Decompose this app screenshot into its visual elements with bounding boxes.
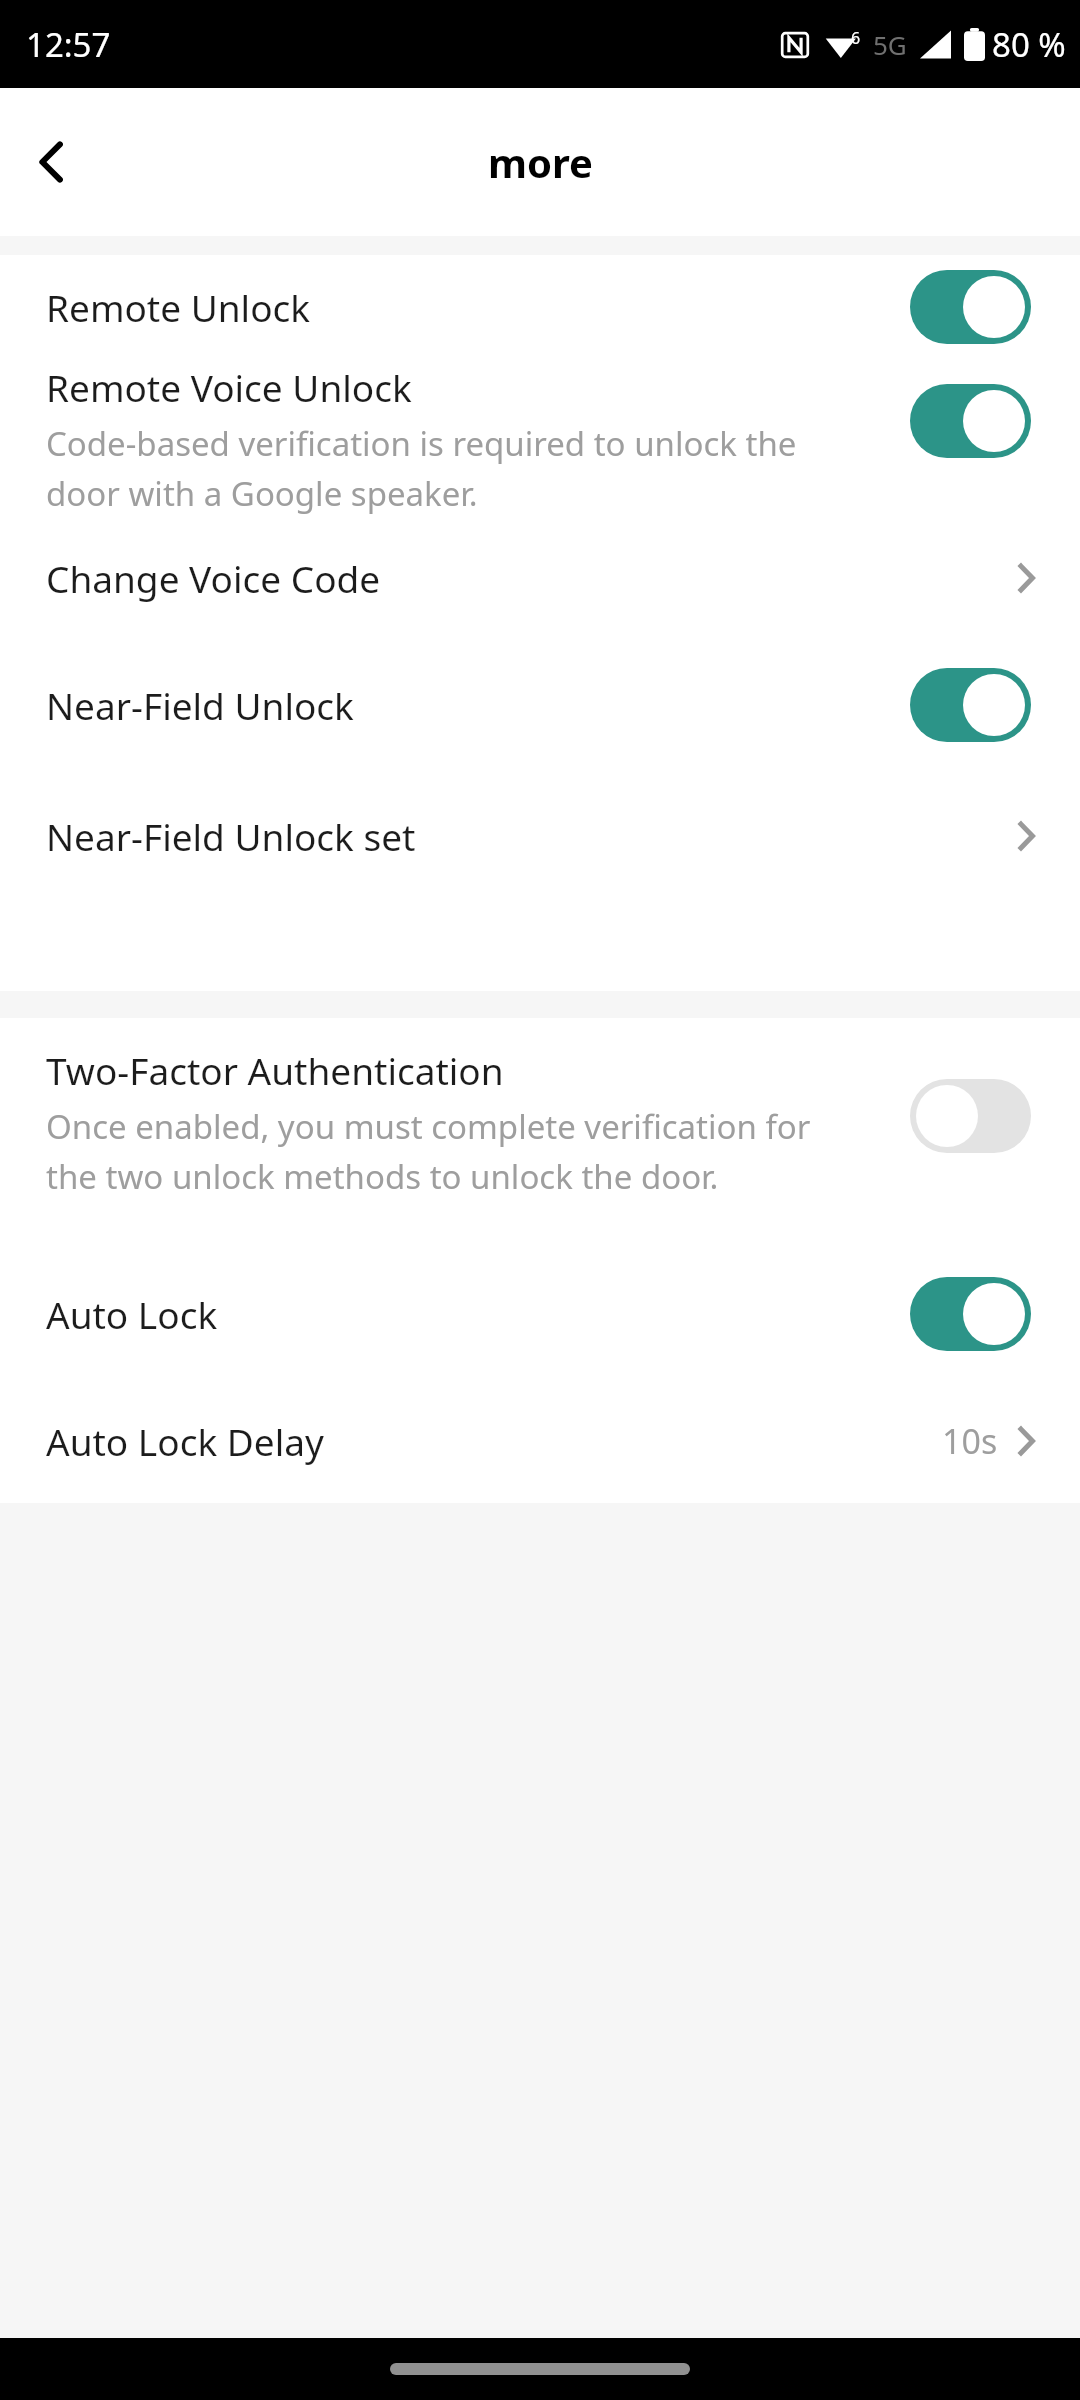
button[interactable]: Toggle on [910,384,1031,458]
staticText: Two-Factor Authentication [46,1045,504,1095]
button[interactable]: Change Voice Code [0,519,1080,637]
button[interactable]: Two-Factor Authentication [0,1018,1080,1250]
button[interactable]: Auto Lock Delay [0,1378,1080,1503]
button[interactable]: Remote Unlock [0,255,1080,359]
staticText: 12:57 [26,22,111,67]
staticText: the two unlock methods to unlock the doo… [46,1154,719,1199]
staticText: door with a Google speaker. [46,471,478,516]
staticText: Remote Voice Unlock [46,362,412,412]
staticText: Near-Field Unlock set [46,811,416,861]
staticText: 80 % [992,22,1066,67]
button[interactable]: Toggle on [910,668,1031,742]
button[interactable]: Remote Voice Unlock [0,359,1080,519]
button[interactable]: Toggle on [910,1277,1031,1351]
staticText: Near-Field Unlock [46,680,354,730]
button[interactable]: Near-Field Unlock set [0,773,1080,898]
button[interactable]: Toggle on [910,270,1031,344]
staticText: Change Voice Code [46,553,381,603]
button[interactable]: Back [6,116,98,208]
button[interactable]: Toggle off [910,1079,1031,1153]
staticText: 10s [942,1418,998,1464]
staticText: Auto Lock [46,1289,218,1339]
staticText: Code-based verification is required to u… [46,421,797,466]
staticText: more [488,135,593,189]
button[interactable]: Near-Field Unlock [0,637,1080,773]
staticText: Remote Unlock [46,282,311,332]
staticText: Once enabled, you must complete verifica… [46,1104,811,1149]
staticText: 6 [851,27,861,49]
button[interactable]: Auto Lock [0,1250,1080,1378]
staticText: Auto Lock Delay [46,1416,324,1466]
staticText: 5G [873,27,907,62]
